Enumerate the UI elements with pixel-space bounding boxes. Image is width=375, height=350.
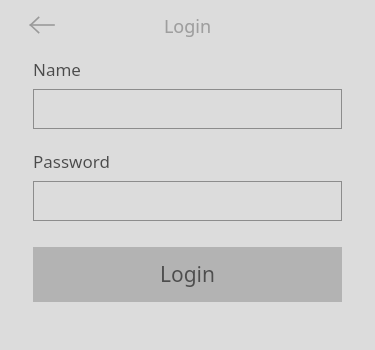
staticText: Name: [33, 58, 81, 81]
staticText: Password: [33, 150, 110, 173]
button[interactable]: Name input field: [33, 89, 342, 129]
button[interactable]: Password input field: [33, 181, 342, 221]
button[interactable]: Back: [22, 9, 62, 41]
staticText: Login: [160, 260, 216, 289]
button[interactable]: Login: [33, 247, 342, 302]
staticText: Login: [0, 14, 375, 39]
